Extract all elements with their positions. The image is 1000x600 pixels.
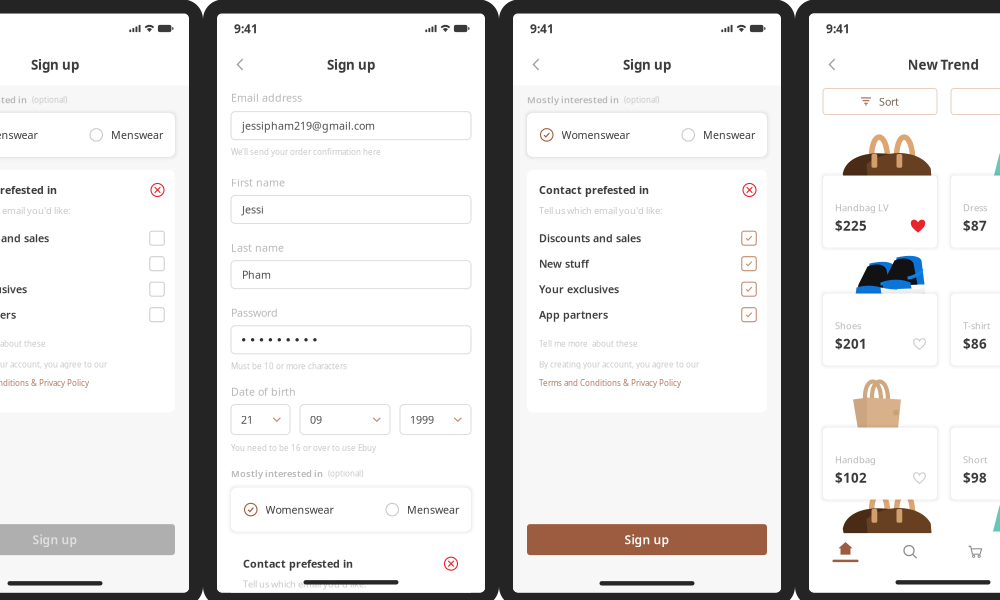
staticText: Date of birth	[231, 384, 296, 399]
staticText: Sort	[879, 94, 899, 109]
button[interactable]: App partners	[0, 302, 164, 327]
button[interactable]: Terms and Conditions & Privacy Policy	[539, 378, 681, 388]
button[interactable]: New stuff	[0, 251, 164, 276]
staticText: T-shirt	[963, 319, 990, 332]
button[interactable]: 21	[231, 405, 290, 435]
button[interactable]: Handbag	[823, 427, 937, 499]
staticText: We'll send your order confirmation here	[231, 147, 381, 157]
button[interactable]: jessipham219@gmail.com	[231, 112, 471, 140]
button[interactable]: Menswear	[385, 502, 459, 517]
staticText: Your exclusives	[539, 282, 619, 296]
button[interactable]: Sort	[823, 88, 937, 114]
staticText: (optional)	[624, 94, 659, 105]
button[interactable]: Close	[742, 183, 756, 197]
staticText: Womenswear	[0, 128, 37, 142]
staticText: Must be 10 or more characters	[231, 361, 347, 371]
staticText: Sign up	[624, 532, 669, 547]
staticText: Mostly interested in	[231, 467, 323, 480]
staticText: Handbag LV	[835, 201, 889, 214]
button[interactable]: Womenswear	[540, 128, 629, 142]
button[interactable]: Womenswear	[244, 502, 333, 517]
staticText: You need to be 16 or over to use Ebuy	[231, 443, 376, 453]
button[interactable]: Handbag LV	[823, 175, 937, 247]
staticText: Your exclusives	[0, 282, 27, 296]
button[interactable]: Cart	[943, 533, 1000, 571]
staticText: Sign up	[623, 56, 671, 73]
staticText: 1999	[410, 412, 434, 427]
button[interactable]: Close	[150, 183, 164, 197]
staticText: Terms and Conditions & Privacy Policy	[0, 378, 89, 388]
button[interactable]: Discounts and sales	[539, 225, 756, 251]
staticText: Tell me more about these	[539, 338, 638, 349]
staticText: $86	[963, 335, 987, 352]
button[interactable]: Back	[217, 49, 255, 79]
staticText: Tell us which email you'd like:	[539, 204, 663, 216]
button[interactable]: Shoes	[823, 293, 937, 365]
button[interactable]: 1999	[400, 405, 471, 435]
staticText: 9:41	[826, 20, 850, 36]
button[interactable]: Home	[813, 533, 878, 571]
button[interactable]: Tell me more about these	[539, 338, 638, 349]
button[interactable]: Menswear	[89, 128, 163, 142]
staticText: Womenswear	[561, 128, 629, 142]
staticText: $98	[963, 469, 987, 486]
staticText: Menswear	[111, 128, 163, 142]
staticText: Jessi	[242, 202, 264, 217]
button[interactable]: Search	[878, 533, 943, 571]
button[interactable]: Short	[951, 427, 1000, 499]
button[interactable]: 09	[300, 405, 390, 435]
button[interactable]: Menswear	[681, 128, 755, 142]
staticText: App partners	[0, 308, 16, 322]
staticText: jessipham219@gmail.com	[242, 119, 375, 133]
staticText: Mostly interested in	[527, 93, 619, 106]
button[interactable]: T-shirt	[951, 293, 1000, 365]
staticText: (optional)	[32, 94, 67, 105]
button[interactable]: Filter	[951, 88, 1000, 114]
staticText: Dress	[963, 201, 987, 214]
staticText: Tell us which email you'd like:	[243, 578, 367, 590]
button[interactable]: Sign up	[527, 524, 767, 555]
staticText: 9:41	[530, 20, 554, 36]
staticText: (optional)	[328, 468, 363, 479]
staticText: Menswear	[703, 128, 755, 142]
button[interactable]: Pham	[231, 261, 471, 289]
staticText: Tell me more about these	[0, 338, 46, 349]
staticText: Short	[963, 453, 987, 466]
staticText: First name	[231, 175, 285, 189]
button[interactable]: Jessi	[231, 195, 471, 223]
button[interactable]: Your exclusives	[539, 276, 756, 302]
staticText: Tell us which email you'd like:	[0, 204, 71, 216]
staticText: Sign up	[327, 56, 375, 73]
staticText: $201	[835, 335, 867, 352]
staticText: By creating your account, you agree to o…	[0, 359, 107, 370]
staticText: Contact prefested in	[539, 183, 649, 197]
staticText: Email address	[231, 90, 302, 105]
staticText: Password	[231, 306, 278, 320]
staticText: Mostly interested in	[0, 93, 27, 106]
staticText: $225	[835, 217, 867, 234]
button[interactable]: Discounts and sales	[0, 225, 164, 251]
button[interactable]: Tell me more about these	[0, 338, 46, 349]
button[interactable]: Password	[231, 326, 471, 354]
button[interactable]: Sign up	[0, 524, 175, 555]
staticText: $102	[835, 469, 867, 486]
staticText: Sign up	[32, 532, 77, 547]
staticText: 21	[241, 412, 253, 427]
button[interactable]: Back	[513, 49, 551, 79]
staticText: Sign up	[31, 56, 79, 73]
staticText: New Trend	[907, 56, 978, 73]
staticText: Menswear	[407, 502, 459, 517]
button[interactable]: Your exclusives	[0, 276, 164, 302]
button[interactable]: Dress	[951, 175, 1000, 247]
button[interactable]: App partners	[539, 302, 756, 327]
button[interactable]: Terms and Conditions & Privacy Policy	[0, 378, 89, 388]
staticText: Shoes	[835, 319, 861, 332]
button[interactable]: Womenswear	[0, 128, 37, 142]
button[interactable]: New stuff	[539, 251, 756, 276]
staticText: Discounts and sales	[0, 231, 49, 245]
staticText: Womenswear	[265, 502, 333, 517]
staticText: Discounts and sales	[539, 231, 641, 245]
button[interactable]: Back	[809, 49, 847, 79]
staticText: Pham	[242, 267, 271, 282]
staticText: New stuff	[539, 257, 589, 271]
